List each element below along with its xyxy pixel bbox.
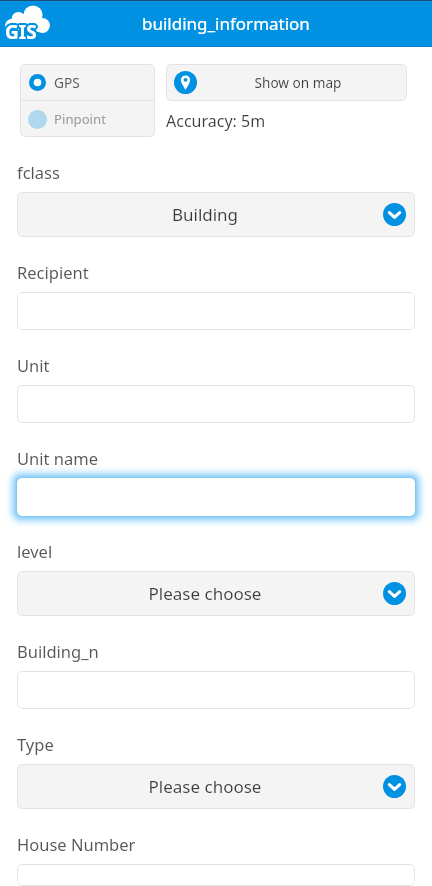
staticText: Type — [17, 733, 54, 755]
staticText: GIS — [5, 19, 37, 45]
staticText: Please choose — [17, 775, 393, 798]
staticText: Building_n — [17, 640, 99, 662]
staticText: GIS — [7, 20, 39, 46]
button[interactable] — [17, 671, 415, 709]
button[interactable] — [17, 864, 415, 886]
other: Show on map — [174, 71, 197, 94]
button[interactable] — [17, 478, 415, 516]
staticText: GIS — [6, 20, 38, 46]
button[interactable]: Show on map — [166, 64, 407, 101]
staticText: GIS — [5, 19, 37, 45]
staticText: GIS — [4, 21, 36, 47]
staticText: fclass — [17, 161, 60, 183]
staticText: GIS — [7, 19, 39, 45]
button[interactable]: Please choose — [17, 764, 415, 809]
staticText: GIS — [6, 17, 38, 43]
staticText: Accuracy: 5m — [166, 110, 266, 132]
staticText: Building — [17, 203, 393, 226]
staticText: Show on map — [197, 73, 399, 92]
button[interactable]: Building — [17, 192, 415, 237]
staticText: GIS — [3, 18, 35, 44]
staticText: building_information — [142, 12, 310, 35]
staticText: GIS — [5, 21, 37, 47]
staticText: GIS — [7, 18, 39, 44]
button[interactable] — [17, 292, 415, 330]
staticText: GIS — [6, 18, 38, 44]
staticText: GIS — [5, 17, 37, 43]
staticText: GPS — [54, 73, 80, 92]
staticText: House Number — [17, 833, 136, 855]
staticText: GIS — [4, 17, 36, 43]
staticText: Please choose — [17, 582, 393, 605]
staticText: Unit — [17, 354, 50, 376]
staticText: Unit name — [17, 447, 98, 469]
button[interactable]: Pinpoint — [20, 101, 155, 137]
staticText: GIS — [6, 19, 38, 45]
staticText: GIS — [5, 18, 37, 44]
staticText: GIS — [6, 21, 38, 47]
staticText: Recipient — [17, 261, 89, 283]
staticText: GIS — [5, 20, 37, 46]
staticText: GIS — [4, 18, 36, 44]
staticText: level — [17, 540, 53, 562]
staticText: GIS — [3, 19, 35, 45]
button[interactable]: GPS — [20, 64, 155, 100]
staticText: Pinpoint — [54, 110, 106, 128]
button[interactable] — [17, 385, 415, 423]
staticText: GIS — [3, 20, 35, 46]
button[interactable]: Please choose — [17, 571, 415, 616]
staticText: GIS — [4, 19, 36, 45]
staticText: GIS — [4, 20, 36, 46]
